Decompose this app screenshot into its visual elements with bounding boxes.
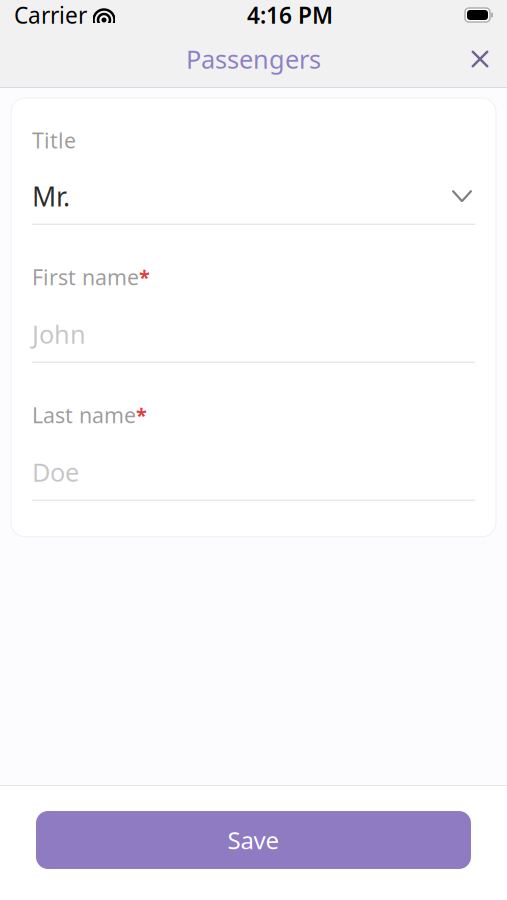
staticText: First name xyxy=(32,263,139,291)
button[interactable]: Title xyxy=(32,126,475,225)
staticText: Passengers xyxy=(186,42,321,76)
staticText: Carrier xyxy=(14,0,87,30)
staticText: * xyxy=(136,402,147,428)
staticText: Doe xyxy=(32,455,79,489)
staticText: Last name xyxy=(32,401,136,429)
button[interactable]: Close xyxy=(453,34,507,84)
button[interactable]: Save xyxy=(36,811,471,869)
staticText: 4:16 PM xyxy=(247,0,333,30)
staticText: John xyxy=(32,317,86,351)
button[interactable]: Last name xyxy=(32,401,475,501)
button[interactable]: First name xyxy=(32,263,475,363)
staticText: * xyxy=(139,264,150,290)
staticText: Title xyxy=(32,126,76,154)
staticText: Mr. xyxy=(32,178,70,214)
staticText: Save xyxy=(227,824,279,856)
